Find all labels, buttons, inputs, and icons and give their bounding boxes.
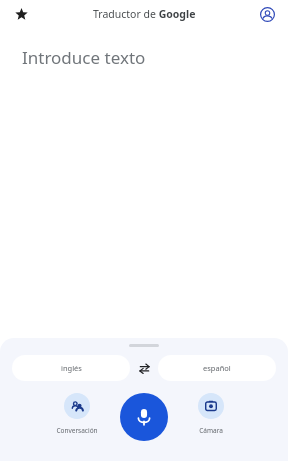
button[interactable]: español	[158, 355, 276, 381]
button[interactable]: Favoritos	[8, 1, 34, 27]
staticText: Traductor de Google	[93, 7, 196, 21]
staticText: español	[203, 363, 231, 373]
staticText: Introduce texto	[22, 46, 146, 69]
button[interactable]: Micrófono	[120, 393, 168, 441]
staticText: Conversación	[56, 426, 98, 435]
button[interactable]: Conversación	[38, 393, 116, 435]
staticText: inglés	[61, 363, 82, 373]
button[interactable]: Cuenta de Google	[254, 1, 280, 27]
button[interactable]: inglés	[12, 355, 130, 381]
button[interactable]: Cámara	[172, 393, 250, 435]
staticText: Cámara	[199, 426, 223, 435]
button[interactable]: Cambiar idiomas	[130, 355, 158, 381]
button[interactable]: Introduce texto	[22, 46, 288, 69]
